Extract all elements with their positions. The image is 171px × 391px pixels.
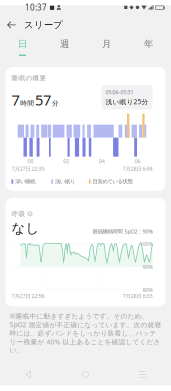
button[interactable]: 年 (127, 36, 169, 58)
staticText: 7月27日 22:56 (11, 292, 44, 299)
staticText: 最低睡眠時間 SpO2：90% (92, 228, 152, 235)
staticText: 05:06-05:31 (105, 89, 133, 96)
staticText: 週 (60, 38, 69, 50)
staticText: 7月28日 6:48 (122, 165, 152, 172)
staticText: 00 (27, 158, 33, 165)
button[interactable]: 週 (43, 36, 85, 58)
staticText: 日 (18, 38, 27, 50)
staticText: 深い睡眠 (15, 178, 35, 185)
staticText: 浅い眠り25分 (105, 97, 148, 106)
staticText: 睡眠の概要 (11, 74, 46, 82)
staticText: 呼吸 (11, 210, 25, 218)
staticText: 月 (102, 38, 111, 50)
staticText: ※睡眠中に動きすぎたようです。そのため、SpO2 測定値が不正確になっています。… (9, 311, 161, 354)
staticText: 57 (35, 90, 51, 110)
staticText: 年 (144, 38, 153, 50)
staticText: 02 (63, 158, 69, 165)
staticText: 分 (52, 99, 59, 107)
button[interactable]: 月 (85, 36, 127, 58)
staticText: 目覚めている状態 (93, 178, 133, 185)
staticText: 7 (11, 90, 19, 110)
staticText: 10:37 (25, 2, 47, 13)
staticText: 浅い眠り (55, 178, 75, 185)
button[interactable]: Back (5, 17, 18, 33)
staticText: 90% (142, 263, 152, 270)
staticText: 80% (142, 286, 152, 294)
staticText: 7月27日 22:35 (11, 165, 44, 172)
staticText: 7月28日 6:33 (122, 292, 152, 299)
staticText: 100% (139, 240, 152, 247)
staticText: 06 (134, 158, 140, 165)
staticText: 04 (99, 158, 105, 165)
staticText: スリープ (24, 19, 63, 31)
staticText: 時間 (20, 99, 34, 107)
staticText: なし (11, 220, 39, 236)
button[interactable]: 日 (1, 36, 43, 58)
